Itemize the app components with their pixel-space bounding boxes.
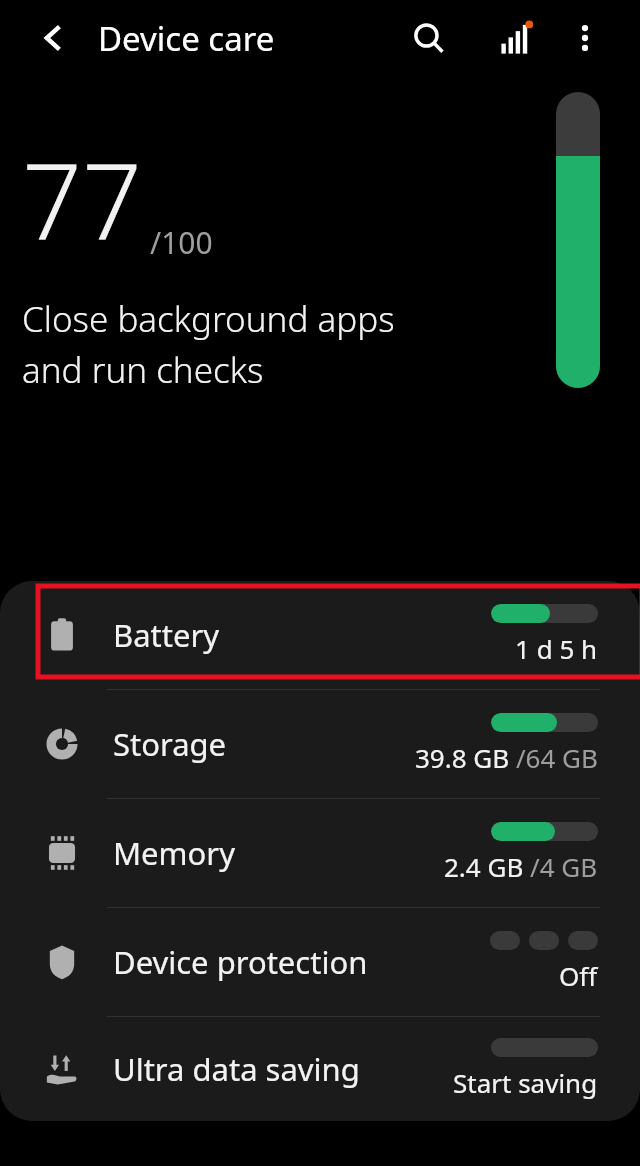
button[interactable]: Device protection [0, 908, 640, 1016]
staticText: /100 [150, 222, 213, 263]
button[interactable]: Back [26, 10, 82, 66]
staticText: 39.8 GB /64 GB [415, 740, 598, 775]
button[interactable]: Network status [486, 9, 544, 67]
button[interactable]: More options [556, 9, 614, 67]
staticText: Ultra data saving [113, 1048, 360, 1090]
button[interactable]: Ultra data saving [0, 1017, 640, 1121]
staticText: Off [559, 958, 598, 993]
staticText: Start saving [453, 1065, 598, 1100]
staticText: 1 d 5 h [515, 631, 598, 666]
button[interactable]: Storage [0, 690, 640, 798]
staticText: Device care [98, 16, 275, 61]
button[interactable]: Battery [0, 581, 640, 689]
button[interactable]: Search [400, 9, 458, 67]
staticText: Memory [113, 832, 235, 874]
staticText: 2.4 GB /4 GB [444, 849, 598, 884]
staticText: Storage [113, 723, 227, 765]
staticText: Close background apps and run checks [22, 295, 395, 393]
staticText: Device protection [113, 941, 368, 983]
staticText: Battery [113, 614, 220, 656]
button[interactable]: Memory [0, 799, 640, 907]
staticText: 77 [22, 128, 142, 271]
